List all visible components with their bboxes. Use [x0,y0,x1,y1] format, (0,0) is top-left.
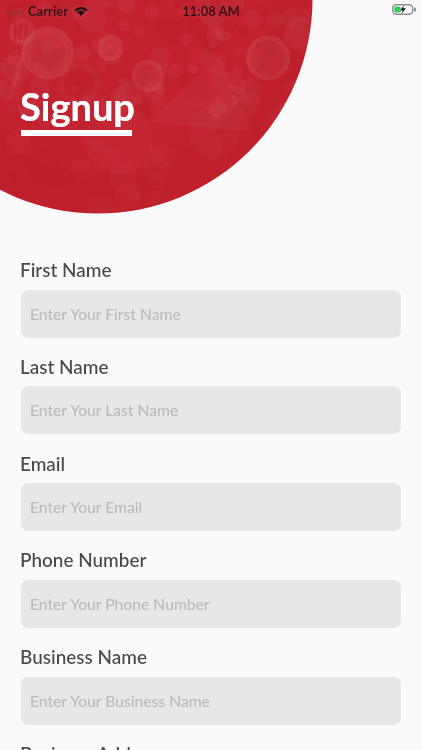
staticText: Business Name [20,645,147,668]
staticText: Email [20,452,66,475]
other: Wi-Fi [73,4,89,16]
staticText: Enter Your Email [30,498,143,517]
staticText: Enter Your Last Name [30,401,179,420]
staticText: Enter Your First Name [30,305,181,324]
staticText: Business Address [20,742,165,750]
button[interactable]: Enter Your Phone Number [21,580,401,628]
staticText: Enter Your Business Name [30,692,210,711]
button[interactable]: Enter Your First Name [21,290,401,338]
staticText: Enter Your Phone Number [30,595,210,614]
staticText: Signup [20,83,135,129]
staticText: Last Name [20,355,109,378]
button[interactable]: Enter Your Business Name [21,677,401,725]
button[interactable]: Enter Your Email [21,483,401,531]
staticText: Phone Number [20,548,147,571]
staticText: Carrier [28,3,68,19]
other: Battery charging [392,4,418,16]
staticText: First Name [20,258,112,281]
button[interactable]: Enter Your Last Name [21,386,401,434]
staticText: 11:08 AM [0,3,422,19]
